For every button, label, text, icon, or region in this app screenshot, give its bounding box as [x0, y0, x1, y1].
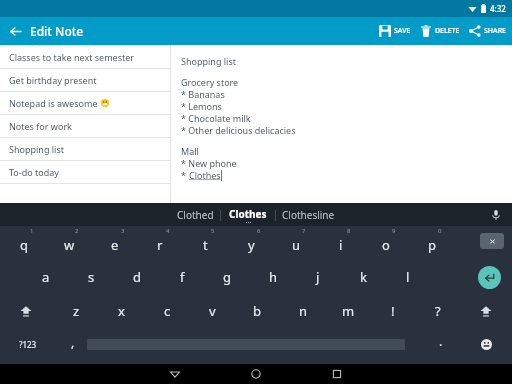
- button[interactable]: DELETE: [420, 17, 460, 45]
- staticText: q: [20, 236, 28, 254]
- button[interactable]: Clothes: [221, 205, 275, 225]
- staticText: j: [316, 268, 320, 286]
- button[interactable]: v: [192, 294, 232, 328]
- button[interactable]: Notepad is awesome: [0, 92, 170, 114]
- button[interactable]: d: [117, 260, 157, 294]
- staticText: 5: [211, 227, 215, 235]
- button[interactable]: 3: [95, 226, 135, 260]
- button[interactable]: Backspace: [480, 233, 504, 249]
- button[interactable]: Clothesline: [276, 205, 341, 225]
- button[interactable]: z: [56, 294, 96, 328]
- staticText: * New phone: [181, 157, 237, 169]
- button[interactable]: Shift: [468, 294, 504, 328]
- button[interactable]: x: [101, 294, 141, 328]
- button[interactable]: k: [343, 260, 383, 294]
- staticText: a: [42, 268, 50, 286]
- staticText: 2: [75, 227, 79, 235]
- staticText: c: [164, 302, 171, 320]
- staticText: 4:32: [490, 3, 506, 14]
- button[interactable]: 5: [185, 226, 225, 260]
- staticText: .: [439, 333, 443, 349]
- staticText: ?123: [19, 339, 37, 350]
- button[interactable]: !: [373, 294, 413, 328]
- button[interactable]: ?: [418, 294, 458, 328]
- staticText: 3: [121, 227, 125, 235]
- button[interactable]: Classes to take next semester: [0, 46, 170, 68]
- button[interactable]: Notes for work: [0, 115, 170, 137]
- staticText: Clothes: [229, 207, 267, 221]
- staticText: SAVE: [394, 26, 411, 36]
- staticText: 6: [257, 227, 261, 235]
- staticText: g: [223, 268, 231, 286]
- button[interactable]: a: [26, 260, 66, 294]
- staticText: 1: [30, 227, 34, 235]
- button[interactable]: 6: [231, 226, 271, 260]
- button[interactable]: c: [147, 294, 187, 328]
- staticText: u: [292, 236, 301, 254]
- staticText: 8: [347, 227, 351, 235]
- staticText: Notepad is awesome: [9, 97, 98, 109]
- button[interactable]: f: [162, 260, 202, 294]
- staticText: r: [157, 236, 163, 254]
- button[interactable]: h: [253, 260, 293, 294]
- button[interactable]: ,: [58, 328, 88, 360]
- button[interactable]: g: [207, 260, 247, 294]
- button[interactable]: 9: [366, 226, 406, 260]
- staticText: k: [360, 268, 367, 286]
- button[interactable]: Emoji: [472, 328, 500, 360]
- staticText: m: [342, 302, 355, 320]
- staticText: Classes to take next semester: [9, 51, 135, 63]
- button[interactable]: SHARE: [469, 17, 506, 45]
- button[interactable]: j: [298, 260, 338, 294]
- staticText: h: [269, 268, 278, 286]
- staticText: x: [118, 302, 125, 320]
- button[interactable]: 4: [140, 226, 180, 260]
- staticText: To-do today: [9, 166, 59, 178]
- button[interactable]: s: [71, 260, 111, 294]
- staticText: !: [391, 302, 395, 320]
- button[interactable]: 0: [412, 226, 452, 260]
- staticText: 0: [438, 227, 442, 235]
- button[interactable]: n: [283, 294, 323, 328]
- button[interactable]: To-do today: [0, 161, 170, 183]
- staticText: Clothesline: [282, 208, 335, 222]
- staticText: 4: [166, 227, 170, 235]
- staticText: Mall: [181, 145, 199, 157]
- button[interactable]: Back: [157, 364, 193, 384]
- staticText: e: [111, 236, 119, 254]
- staticText: l: [406, 268, 410, 286]
- button[interactable]: 1: [4, 226, 44, 260]
- staticText: Clothes: [189, 169, 221, 181]
- button[interactable]: Voice input: [487, 206, 505, 224]
- button[interactable]: m: [328, 294, 368, 328]
- staticText: w: [64, 236, 75, 254]
- button[interactable]: Get birthday present: [0, 69, 170, 91]
- staticText: y: [248, 236, 255, 254]
- button[interactable]: Enter: [477, 265, 501, 289]
- staticText: *: [181, 169, 189, 181]
- button[interactable]: Recent apps: [319, 364, 355, 384]
- button[interactable]: SAVE: [379, 17, 411, 45]
- staticText: Shopping list: [9, 143, 64, 155]
- button[interactable]: .: [428, 328, 454, 360]
- staticText: f: [180, 268, 185, 286]
- staticText: i: [339, 236, 343, 254]
- staticText: * Chocolate milk: [181, 112, 251, 124]
- button[interactable]: 8: [321, 226, 361, 260]
- button[interactable]: Clothed: [171, 205, 220, 225]
- button[interactable]: ?123: [8, 328, 48, 360]
- button[interactable]: Shift: [8, 294, 44, 328]
- button[interactable]: 2: [49, 226, 89, 260]
- staticText: Notes for work: [9, 120, 72, 132]
- staticText: SHARE: [484, 26, 506, 36]
- staticText: p: [428, 236, 436, 254]
- staticText: Clothed: [177, 208, 214, 222]
- button[interactable]: b: [237, 294, 277, 328]
- staticText: Grocery store: [181, 76, 239, 88]
- button[interactable]: l: [388, 260, 428, 294]
- button[interactable]: 7: [276, 226, 316, 260]
- button[interactable]: Home: [238, 364, 274, 384]
- button[interactable]: Back: [0, 17, 30, 45]
- button[interactable]: Shopping list: [0, 138, 170, 160]
